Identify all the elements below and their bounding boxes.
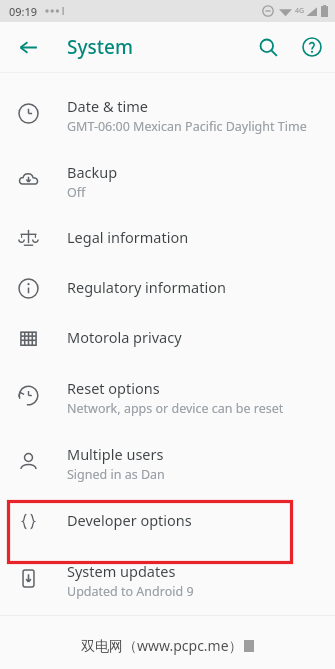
- staticText: Date & time: [67, 96, 148, 116]
- button[interactable]: Help: [292, 27, 332, 67]
- button[interactable]: System updates: [0, 538, 335, 604]
- staticText: Signed in as Dan: [67, 466, 165, 483]
- staticText: Backup: [67, 162, 118, 182]
- staticText: Developer options: [67, 510, 192, 530]
- staticText: Legal information: [67, 227, 189, 247]
- staticText: Regulatory information: [67, 277, 226, 297]
- button[interactable]: Developer options: [0, 487, 335, 538]
- button[interactable]: Reset options: [0, 355, 335, 421]
- staticText: Network, apps or device can be reset: [67, 400, 284, 417]
- staticText: System: [67, 34, 133, 60]
- staticText: System updates: [67, 561, 176, 581]
- button[interactable]: Search: [248, 27, 288, 67]
- button[interactable]: Multiple users: [0, 421, 335, 487]
- staticText: Multiple users: [67, 444, 164, 464]
- button[interactable]: Backup: [0, 139, 335, 205]
- button[interactable]: Regulatory information: [0, 255, 335, 305]
- staticText: GMT-06:00 Mexican Pacific Daylight Time: [67, 118, 307, 135]
- staticText: Off: [67, 184, 86, 201]
- button[interactable]: Back: [8, 27, 48, 67]
- button[interactable]: Motorola privacy: [0, 305, 335, 355]
- staticText: 09:19: [9, 4, 38, 19]
- staticText: Reset options: [67, 378, 160, 398]
- button[interactable]: Legal information: [0, 205, 335, 255]
- staticText: 4G: [295, 6, 305, 16]
- staticText: 双电网（www.pcpc.me）: [81, 636, 243, 655]
- button[interactable]: Date & time: [0, 73, 335, 139]
- staticText: Motorola privacy: [67, 327, 182, 347]
- staticText: Updated to Android 9: [67, 583, 194, 600]
